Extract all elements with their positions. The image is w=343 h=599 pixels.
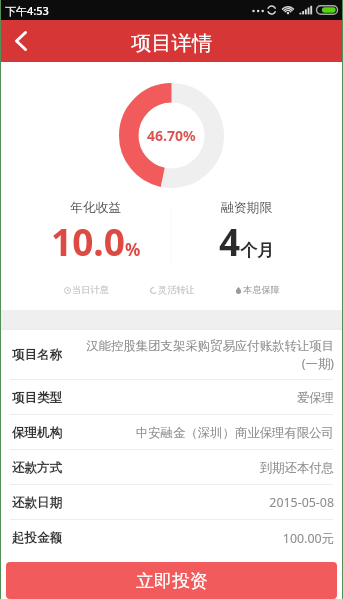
button[interactable]: 项目名称	[0, 330, 343, 380]
staticText: 项目详情	[131, 30, 213, 56]
button[interactable]: 保理机构	[0, 415, 343, 450]
button[interactable]: 立即投资	[6, 562, 337, 599]
staticText: 100.00元	[72, 530, 334, 547]
staticText: 当日计息	[72, 284, 109, 296]
staticText: 到期还本付息	[72, 460, 334, 476]
staticText: 2015-05-08	[72, 494, 334, 511]
button[interactable]: 本息保障	[235, 284, 280, 296]
staticText: 项目名称	[12, 347, 62, 363]
button[interactable]: 项目类型	[0, 380, 343, 415]
staticText: 还款方式	[12, 460, 62, 476]
staticText: 起投金额	[12, 530, 62, 546]
button[interactable]: 灵活转让	[150, 284, 195, 296]
staticText: 立即投资	[136, 570, 208, 593]
staticText: 灵活转让	[158, 284, 195, 296]
staticText: 46.70%	[147, 126, 196, 145]
button[interactable]: 还款日期	[0, 485, 343, 520]
staticText: 还款日期	[12, 495, 62, 511]
button[interactable]: Back	[0, 20, 42, 62]
staticText: 保理机构	[12, 425, 62, 441]
staticText: 爱保理	[72, 390, 334, 406]
staticText: 汉能控股集团支架采购贸易应付账款转让项目(一期)	[72, 338, 334, 372]
staticText: 融资期限	[221, 200, 273, 216]
staticText: 年化收益	[70, 200, 122, 216]
staticText: 本息保障	[243, 284, 280, 296]
staticText: 中安融金（深圳）商业保理有限公司	[72, 425, 334, 441]
button[interactable]: 当日计息	[64, 284, 109, 296]
button[interactable]: 起投金额	[0, 520, 343, 556]
staticText: 项目类型	[12, 390, 62, 406]
button[interactable]: 还款方式	[0, 450, 343, 485]
staticText: 10.0%	[51, 216, 141, 266]
staticText: 4个月	[219, 216, 275, 266]
staticText: 下午4:53	[5, 3, 49, 18]
